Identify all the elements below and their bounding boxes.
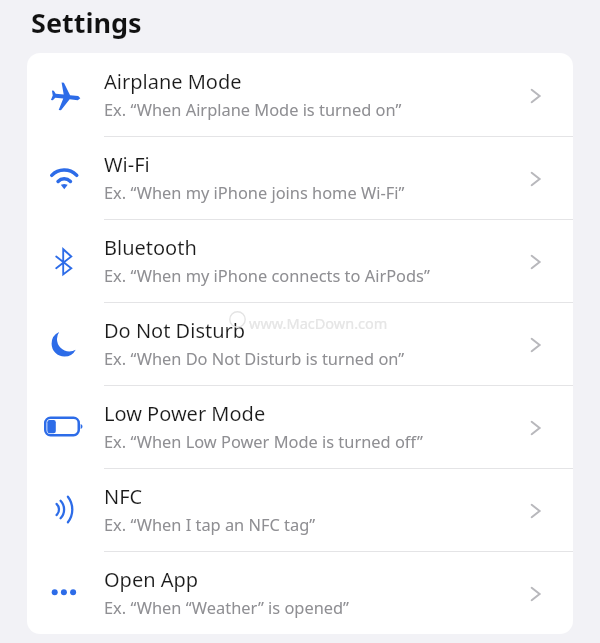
staticText: Low Power Mode xyxy=(104,400,266,427)
button[interactable]: Do Not Disturb xyxy=(27,302,573,385)
staticText: NFC xyxy=(104,483,143,510)
staticText: Ex. “When my iPhone connects to AirPods” xyxy=(104,264,430,286)
button[interactable]: Bluetooth xyxy=(27,219,573,302)
other: Open Do Not Disturb details xyxy=(526,336,544,354)
other: NFC xyxy=(41,487,91,537)
other: Do Not Disturb xyxy=(41,321,91,371)
staticText: www.MacDown.com xyxy=(249,313,388,333)
staticText: Open App xyxy=(104,566,199,593)
staticText: Ex. “When “Weather” is opened” xyxy=(104,596,350,618)
button[interactable]: Wi-Fi xyxy=(27,136,573,219)
other: Open Low Power Mode details xyxy=(526,419,544,437)
staticText: Settings xyxy=(31,4,142,41)
other: Open Airplane Mode details xyxy=(526,87,544,105)
button[interactable]: NFC xyxy=(27,468,573,551)
other: Open NFC details xyxy=(526,502,544,520)
button[interactable]: Low Power Mode xyxy=(27,385,573,468)
staticText: Ex. “When I tap an NFC tag” xyxy=(104,513,316,535)
other: Open Open App details xyxy=(526,585,544,603)
staticText: Bluetooth xyxy=(104,234,197,261)
staticText: Ex. “When Airplane Mode is turned on” xyxy=(104,98,402,120)
other: Open Bluetooth details xyxy=(526,253,544,271)
button[interactable]: Airplane Mode xyxy=(27,53,573,136)
staticText: Ex. “When my iPhone joins home Wi-Fi” xyxy=(104,181,405,203)
other: Bluetooth xyxy=(41,238,91,288)
other: Open Wi-Fi details xyxy=(526,170,544,188)
other: Low Power Mode xyxy=(41,404,91,454)
staticText: Do Not Disturb xyxy=(104,317,246,344)
staticText: Wi-Fi xyxy=(104,151,150,178)
other: Open App xyxy=(41,570,91,620)
other: Wi-Fi xyxy=(41,155,91,205)
staticText: Airplane Mode xyxy=(104,68,242,95)
staticText: Ex. “When Low Power Mode is turned off” xyxy=(104,430,423,452)
staticText: Ex. “When Do Not Disturb is turned on” xyxy=(104,347,405,369)
other: Airplane Mode xyxy=(41,72,91,122)
button[interactable]: Open App xyxy=(27,551,573,634)
